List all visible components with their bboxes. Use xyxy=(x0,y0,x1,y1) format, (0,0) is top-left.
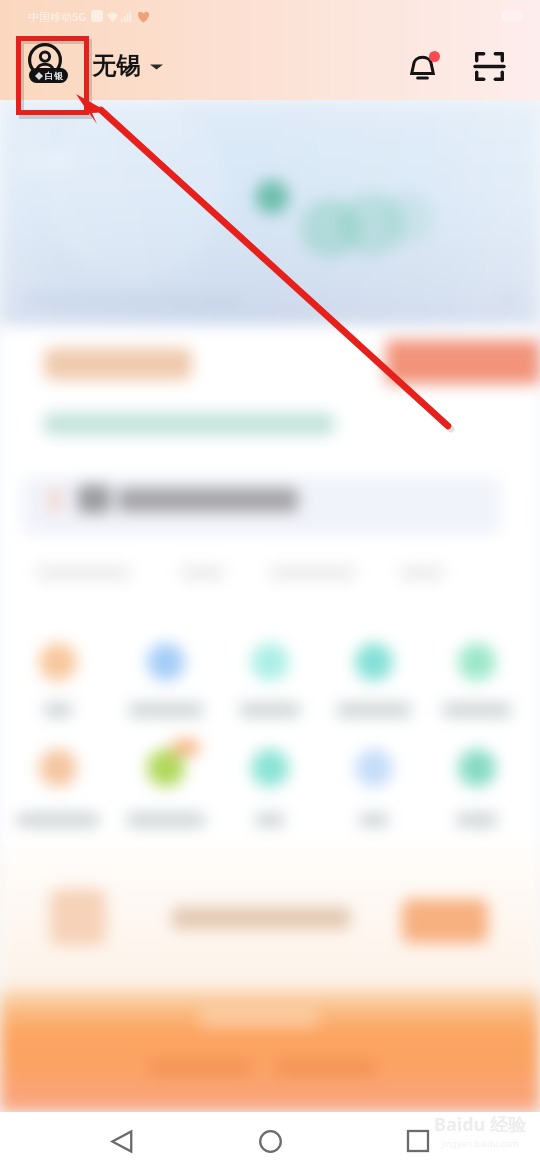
button[interactable]: Coupon xyxy=(44,348,192,380)
button[interactable]: Service xyxy=(226,738,314,822)
button[interactable]: Advertisement xyxy=(0,988,540,1112)
button[interactable]: Service xyxy=(433,738,521,822)
button[interactable]: Scan xyxy=(466,43,512,89)
button[interactable]: Promotion xyxy=(0,845,540,988)
staticText: 白银 xyxy=(45,70,63,81)
staticText: 中国移动5G xyxy=(28,9,87,24)
button[interactable]: Service xyxy=(330,632,418,716)
staticText: 无锡 xyxy=(92,51,140,81)
button[interactable]: Service xyxy=(433,632,521,716)
button[interactable]: Service xyxy=(330,738,418,822)
button[interactable]: Home xyxy=(244,1115,296,1167)
staticText: jingyan.baidu.com xyxy=(441,1137,519,1149)
button[interactable]: Service xyxy=(122,632,210,716)
button[interactable]: Service xyxy=(14,632,102,716)
button[interactable]: Recents xyxy=(392,1115,444,1167)
button[interactable]: Service xyxy=(122,738,210,822)
button[interactable]: Service xyxy=(226,632,314,716)
button[interactable]: Notifications xyxy=(399,43,445,89)
button[interactable]: News xyxy=(22,477,500,535)
button[interactable]: Banner xyxy=(386,340,540,384)
button[interactable]: Back xyxy=(96,1115,148,1167)
button[interactable]: Service xyxy=(14,738,102,822)
staticText: Baidu 经验 xyxy=(434,1112,526,1137)
button[interactable]: Profile xyxy=(22,42,70,90)
